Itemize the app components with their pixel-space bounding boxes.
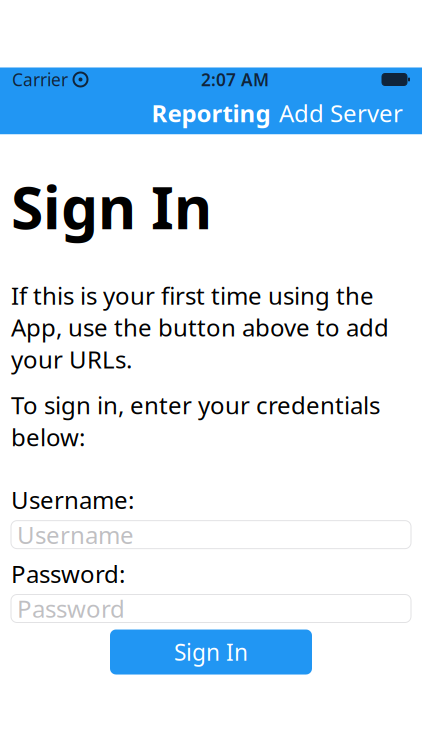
staticText: 2:07 AM <box>201 68 269 91</box>
staticText: Carrier <box>12 68 68 91</box>
staticText: Reporting <box>151 97 270 129</box>
staticText: Sign In <box>174 637 248 667</box>
staticText: Password: <box>11 558 125 589</box>
staticText: To sign in, enter your credentials below… <box>11 389 380 453</box>
staticText: If this is your first time using the App… <box>11 279 389 375</box>
staticText: Sign In <box>11 167 212 245</box>
button[interactable]: Sign In <box>110 629 312 674</box>
staticText: Password <box>17 593 125 624</box>
staticText: Username <box>17 519 134 551</box>
button[interactable]: Reporting <box>143 91 278 135</box>
button[interactable]: Password <box>11 594 411 622</box>
staticText: Add Server <box>279 97 403 129</box>
staticText: Username: <box>11 484 134 516</box>
button[interactable]: Add Server <box>271 91 411 135</box>
button[interactable]: Username <box>11 521 411 549</box>
